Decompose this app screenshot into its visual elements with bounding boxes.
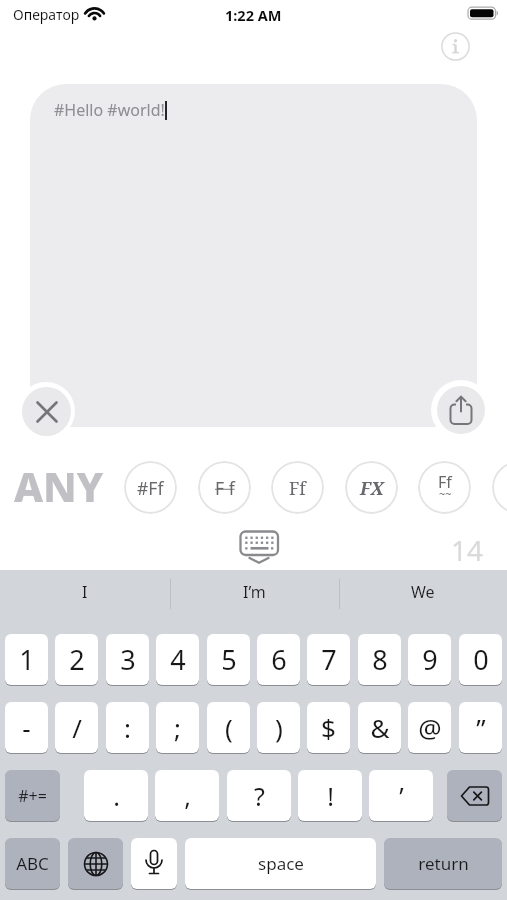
button[interactable]: ? [227, 770, 291, 821]
button[interactable]: return [384, 838, 502, 889]
staticText: ; [174, 710, 181, 745]
staticText: 1:22 AM [225, 5, 282, 25]
button[interactable]: ) [257, 702, 300, 753]
staticText: FX [360, 476, 384, 500]
staticText: 7 [321, 641, 337, 678]
button[interactable]: 1 [5, 634, 48, 685]
button[interactable] [22, 387, 71, 436]
staticText: #+= [18, 785, 47, 807]
button[interactable]: . [84, 770, 148, 821]
staticText: Ff [289, 476, 306, 500]
button[interactable]: , [155, 770, 219, 821]
button[interactable]: 0 [459, 634, 502, 685]
button[interactable]: I’m [170, 570, 339, 614]
button[interactable]: 5 [207, 634, 250, 685]
button[interactable]: : [106, 702, 149, 753]
button[interactable]: 4 [156, 634, 199, 685]
button[interactable]: ABC [5, 838, 60, 889]
staticText: ? [254, 779, 265, 813]
button[interactable]: 7 [307, 634, 350, 685]
button[interactable]: We [339, 570, 507, 614]
staticText: ANY [14, 458, 104, 514]
button[interactable] [68, 838, 123, 889]
button[interactable]: Ff [418, 461, 471, 514]
staticText: ( [225, 710, 233, 745]
staticText: 6 [271, 641, 287, 678]
staticText: @ [418, 710, 442, 745]
button[interactable]: $ [307, 702, 350, 753]
staticText: . [113, 779, 120, 813]
button[interactable]: ( [207, 702, 250, 753]
staticText: 14 [451, 531, 484, 569]
button[interactable] [492, 461, 507, 514]
button[interactable]: & [358, 702, 401, 753]
button[interactable]: - [5, 702, 48, 753]
button[interactable]: FX [345, 461, 398, 514]
button[interactable]: 3 [106, 634, 149, 685]
button[interactable]: space [185, 838, 376, 889]
staticText: ! [327, 779, 334, 813]
button[interactable]: ” [459, 702, 502, 753]
button[interactable] [447, 770, 502, 821]
button[interactable]: / [55, 702, 98, 753]
button[interactable] [437, 386, 485, 434]
staticText: space [258, 852, 304, 875]
staticText: 8 [372, 641, 388, 678]
staticText: We [411, 581, 435, 603]
staticText: Оператор [13, 5, 80, 24]
button[interactable] [441, 32, 470, 61]
staticText: #Ff [137, 476, 164, 500]
staticText: Ff [438, 471, 452, 493]
button[interactable]: 9 [408, 634, 451, 685]
staticText: ” [476, 710, 486, 745]
button[interactable]: ! [298, 770, 362, 821]
staticText: ~~ [439, 486, 452, 501]
staticText: 4 [170, 641, 186, 678]
button[interactable]: F f [198, 461, 251, 514]
staticText: - [22, 710, 31, 745]
button[interactable]: #Ff [124, 461, 177, 514]
staticText: return [418, 852, 469, 875]
staticText: ) [275, 710, 283, 745]
staticText: 1 [19, 641, 35, 678]
staticText: : [124, 710, 131, 745]
staticText: ’ [399, 779, 404, 813]
button[interactable]: @ [408, 702, 451, 753]
button[interactable]: ; [156, 702, 199, 753]
staticText: / [72, 710, 82, 745]
staticText: 3 [120, 641, 136, 678]
button[interactable]: ’ [369, 770, 433, 821]
staticText: 2 [69, 641, 85, 678]
staticText: I’m [243, 581, 266, 603]
staticText: I [82, 581, 88, 603]
staticText: F f [215, 476, 235, 500]
button[interactable]: #Hello #world! [30, 84, 477, 427]
staticText: 5 [221, 641, 237, 678]
staticText: $ [321, 710, 336, 745]
staticText: & [370, 710, 390, 745]
staticText: ABC [16, 852, 49, 875]
button[interactable]: 6 [257, 634, 300, 685]
staticText: #Hello #world! [54, 99, 165, 121]
button[interactable] [238, 528, 282, 566]
button[interactable]: I [0, 570, 170, 614]
staticText: 0 [473, 641, 489, 678]
staticText: , [184, 779, 191, 813]
staticText: 9 [422, 641, 438, 678]
button[interactable]: #+= [5, 770, 60, 821]
button[interactable] [131, 838, 177, 889]
button[interactable]: 2 [55, 634, 98, 685]
button[interactable]: 8 [358, 634, 401, 685]
button[interactable]: Ff [271, 461, 324, 514]
